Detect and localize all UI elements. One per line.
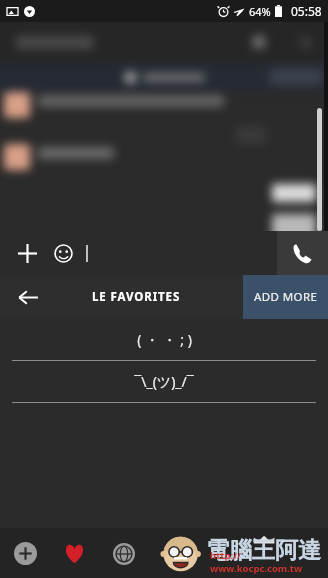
button[interactable]: ADD MORE [243,275,328,319]
staticText: 電腦王阿達 [206,536,321,565]
staticText: ( ・ ・ ; ) [137,330,192,349]
staticText: ADD MORE [254,289,318,305]
button[interactable]: LE FAVORITES [92,289,181,305]
button[interactable]: Web emoticons [107,537,140,570]
staticText: 05:58 [291,3,322,19]
button[interactable]: Add [9,537,42,570]
button[interactable]: Emoji [46,236,80,270]
button[interactable]: Call [277,231,328,275]
staticText: http://www.kocpc.com.tw [210,549,326,575]
staticText: ¯\_(ツ)_/¯ [134,372,194,391]
staticText: 64% [249,4,271,19]
button[interactable]: Favorites [58,537,91,570]
staticText: LE FAVORITES [92,289,181,305]
button[interactable]: Back [0,275,56,319]
button[interactable]: ¯\_(ツ)_/¯ [0,361,328,403]
button[interactable]: Add attachment [10,236,44,270]
button[interactable]: ( ・ ・ ; ) [0,319,328,361]
